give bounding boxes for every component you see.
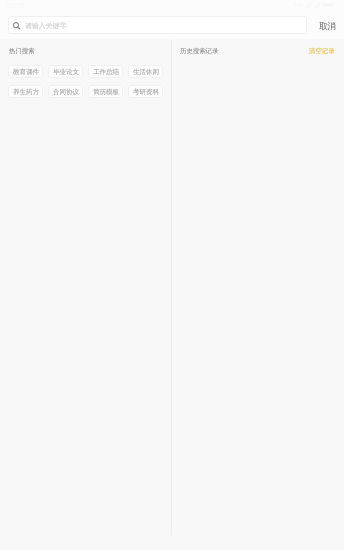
button[interactable]: 毕业论文 <box>48 65 83 78</box>
staticText: 养生药方 <box>13 88 39 96</box>
button[interactable]: 考研资料 <box>128 85 163 98</box>
button[interactable]: Search <box>8 16 307 34</box>
button[interactable]: 养生药方 <box>8 85 43 98</box>
staticText: 工作总结 <box>93 68 119 76</box>
staticText: 简历模板 <box>93 88 119 96</box>
button[interactable]: 取消 <box>312 21 344 45</box>
staticText: 清空记录 <box>309 47 335 55</box>
staticText: 请输入关键字 <box>25 21 67 30</box>
staticText: 热门搜索 <box>9 47 35 55</box>
staticText: 历史搜索记录 <box>180 47 219 55</box>
staticText: 合同协议 <box>53 88 79 96</box>
staticText: 毕业论文 <box>53 68 79 76</box>
button[interactable]: 教育课件 <box>8 65 43 78</box>
button[interactable]: 生活休闲 <box>128 65 163 78</box>
staticText: 考研资料 <box>133 88 159 96</box>
button[interactable]: 简历模板 <box>88 85 123 98</box>
button[interactable]: 合同协议 <box>48 85 83 98</box>
other: Search <box>12 21 21 30</box>
staticText: 生活休闲 <box>133 68 159 76</box>
staticText: 取消 <box>319 21 337 32</box>
button[interactable]: 清空记录 <box>309 47 335 55</box>
staticText: 教育课件 <box>13 68 39 76</box>
button[interactable]: 工作总结 <box>88 65 123 78</box>
